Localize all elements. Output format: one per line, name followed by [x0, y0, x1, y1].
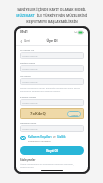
- staticText: Üye Ol: [46, 38, 58, 43]
- staticText: Politikası'nı okudum.: [28, 139, 52, 142]
- staticText: Lütfen giriniz: [22, 101, 38, 104]
- staticText: Lütfen giriniz: [22, 80, 38, 83]
- staticText: Lütfen giriniz: [22, 127, 38, 130]
- staticText: Yenile: [71, 113, 78, 116]
- button[interactable]: 7xK4eQ: [20, 108, 84, 119]
- button[interactable]: Kullanım Koşulları: [20, 134, 84, 143]
- staticText: Ad Soyad: [20, 74, 31, 77]
- staticText: Kayıt Ol: [46, 149, 58, 153]
- staticText: Lütfen giriniz: [22, 67, 38, 70]
- staticText: 7xK4eQ: [30, 111, 46, 117]
- staticText: KEŞFETMEYE BAŞLAYABİLİRSİN: [26, 19, 78, 24]
- staticText: TC Kimlik No: [20, 48, 35, 51]
- staticText: İLE TÜRKİYE'NİN MÜZELERİNİ: [37, 13, 87, 18]
- button[interactable]: Back: [19, 38, 31, 44]
- button[interactable]: Yenile: [67, 111, 81, 117]
- staticText: ve: [53, 135, 56, 139]
- staticText: SANİYELER İÇİNDE KAYIT OLARAK MOBİL: [17, 7, 86, 12]
- other: Back: [20, 40, 23, 43]
- button[interactable]: Kayıt Ol: [20, 146, 84, 155]
- button[interactable]: Lütfen giriniz: [20, 78, 84, 85]
- button[interactable]: Lütfen giriniz: [20, 65, 84, 72]
- staticText: Kullanım Koşulları: [28, 135, 52, 139]
- staticText: Kişisel verileriniz Kültür Bakanlığı tar…: [20, 87, 84, 93]
- staticText: E-posta Adresi: [20, 95, 37, 98]
- staticText: MÜZEKART: [16, 13, 35, 18]
- staticText: Gizlilik: [57, 135, 66, 139]
- staticText: Geri: [24, 39, 30, 43]
- staticText: Lütfen giriniz: [22, 54, 38, 57]
- staticText: 09:41: [20, 30, 28, 34]
- staticText: Doğum Tarihi: [20, 61, 36, 64]
- staticText: Güvenlik Kodu: [20, 121, 37, 124]
- staticText: Sözleşmeler: [20, 158, 36, 162]
- staticText: ৹⊿: [74, 31, 77, 34]
- button[interactable]: Lütfen giriniz: [20, 125, 84, 132]
- staticText: Üyelik sözleşmesi ve aydınlatma metnini …: [20, 163, 84, 169]
- button[interactable]: Lütfen giriniz: [20, 99, 84, 106]
- button[interactable]: Lütfen giriniz: [20, 52, 84, 59]
